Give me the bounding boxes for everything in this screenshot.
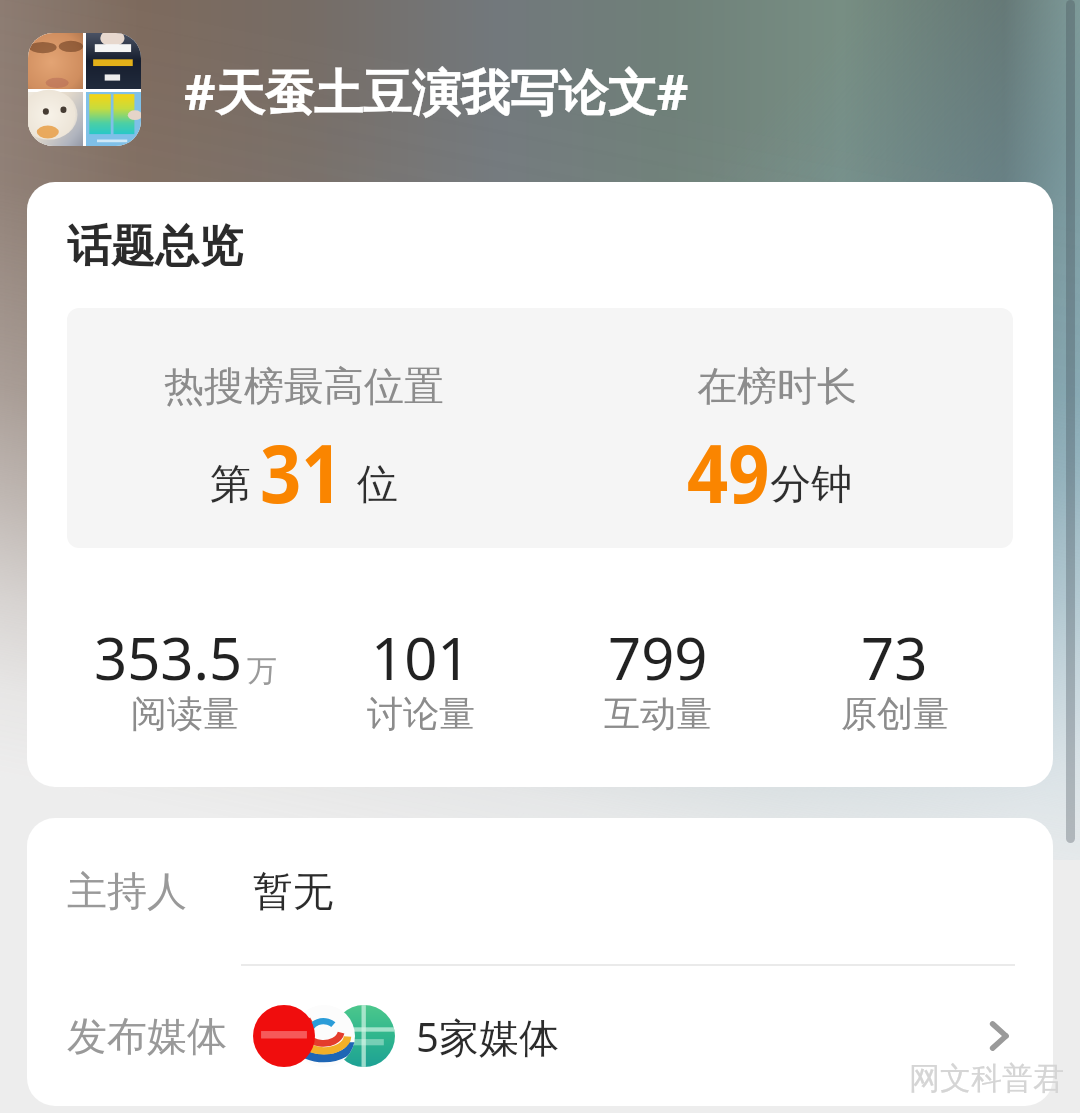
staticText: 互动量 (604, 691, 712, 736)
staticText: 101 (371, 618, 471, 697)
button[interactable]: 发布媒体 (67, 966, 1015, 1106)
staticText: 分钟 (770, 459, 852, 511)
staticText: 发布媒体 (67, 1011, 227, 1061)
staticText: 网文科普君 (909, 1059, 1064, 1098)
staticText: 阅读量 (131, 691, 239, 736)
staticText: 讨论量 (367, 691, 475, 736)
staticText: #天蚕土豆演我写论文# (184, 58, 689, 125)
staticText: 5家媒体 (416, 1009, 559, 1064)
staticText: 49 (687, 417, 770, 526)
staticText: 31 (260, 417, 343, 526)
staticText: 353.5 (94, 618, 243, 697)
staticText: 暂无 (253, 866, 333, 916)
button[interactable]: 主持人 (67, 818, 1053, 964)
staticText: 在榜时长 (697, 361, 857, 411)
button[interactable]: Topic cover (28, 33, 141, 146)
staticText: 799 (608, 618, 708, 697)
staticText: 主持人 (67, 866, 187, 916)
staticText: 第 (210, 459, 251, 511)
staticText: 热搜榜最高位置 (164, 361, 444, 411)
staticText: 话题总览 (67, 219, 243, 274)
staticText: 万 (247, 652, 277, 690)
staticText: 原创量 (841, 691, 949, 736)
staticText: 位 (357, 459, 398, 511)
staticText: 73 (861, 618, 928, 697)
